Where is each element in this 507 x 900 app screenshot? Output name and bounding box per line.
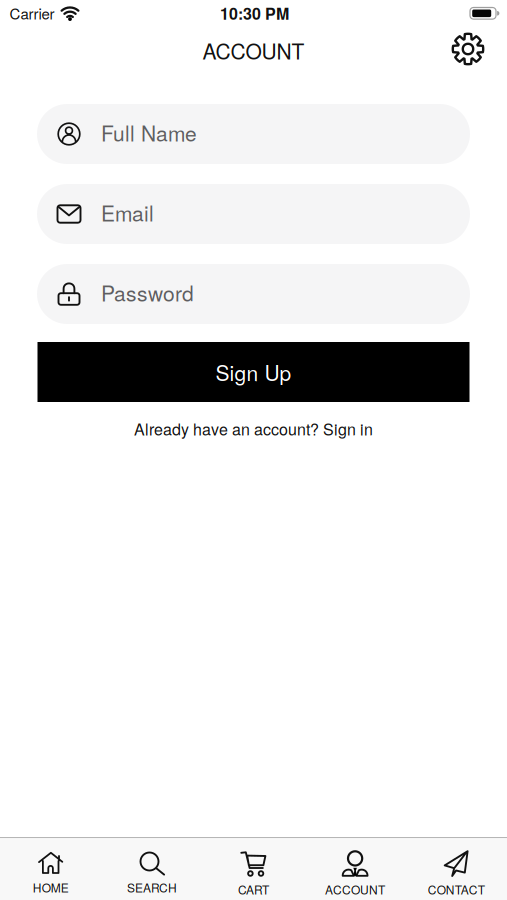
- staticText: Carrier: [9, 2, 54, 24]
- staticText: 10:30 PM: [220, 2, 289, 25]
- staticText: Email: [101, 197, 154, 228]
- button[interactable]: Already have an account? Sign in: [134, 417, 373, 440]
- staticText: HOME: [33, 879, 69, 896]
- staticText: Password: [101, 277, 194, 308]
- button[interactable]: CONTACT: [406, 838, 507, 900]
- staticText: Sign Up: [215, 357, 291, 387]
- staticText: SEARCH: [127, 879, 177, 896]
- button[interactable]: Settings: [451, 32, 485, 66]
- button[interactable]: SEARCH: [101, 838, 203, 900]
- staticText: ACCOUNT: [325, 881, 385, 898]
- staticText: Full Name: [101, 117, 197, 148]
- button[interactable]: Full Name: [37, 104, 470, 164]
- staticText: Already have an account? Sign in: [134, 417, 373, 440]
- button[interactable]: ACCOUNT: [304, 838, 406, 900]
- button[interactable]: CART: [203, 838, 304, 900]
- button[interactable]: HOME: [0, 838, 101, 900]
- staticText: ACCOUNT: [202, 35, 304, 66]
- button[interactable]: Sign Up: [37, 342, 469, 402]
- staticText: CART: [238, 881, 269, 898]
- button[interactable]: Password: [37, 264, 470, 324]
- staticText: CONTACT: [428, 881, 485, 898]
- button[interactable]: Email: [37, 184, 470, 244]
